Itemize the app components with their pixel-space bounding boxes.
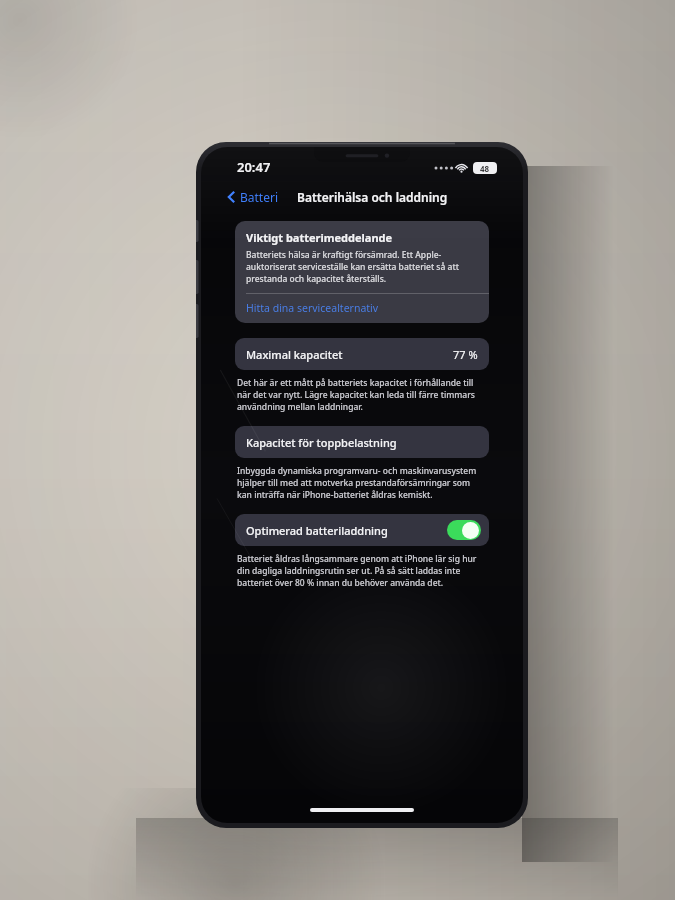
staticText: Kapacitet för toppbelastning [246,435,397,450]
staticText: Batteri [240,189,279,205]
staticText: Optimerad batteriladdning [246,523,388,538]
staticText: Maximal kapacitet [246,347,343,362]
staticText: 20:47 [237,158,271,176]
button[interactable]: Hitta dina servicealternativ [235,294,489,323]
staticText: Hitta dina servicealternativ [246,301,379,315]
button[interactable]: Kapacitet för toppbelastning [235,426,489,458]
button[interactable]: Batteri [223,186,283,208]
staticText: Batterihälsa och laddning [297,189,448,205]
button[interactable]: Maximal kapacitet [235,338,489,370]
staticText: 48 [480,163,490,174]
staticText: Batteriets hälsa är kraftigt försämrad. … [246,249,478,285]
staticText: Inbyggda dynamiska programvaru- och mask… [237,465,487,501]
staticText: Batteriet åldras långsammare genom att i… [237,553,487,589]
staticText: 77 % [453,347,478,362]
staticText: Viktigt batterimeddelande [246,230,393,245]
button[interactable]: Optimerad batteriladdning [235,514,489,546]
staticText: Det här är ett mått på batteriets kapaci… [237,377,487,413]
button[interactable]: Optimerad batteriladdning på [447,520,481,540]
